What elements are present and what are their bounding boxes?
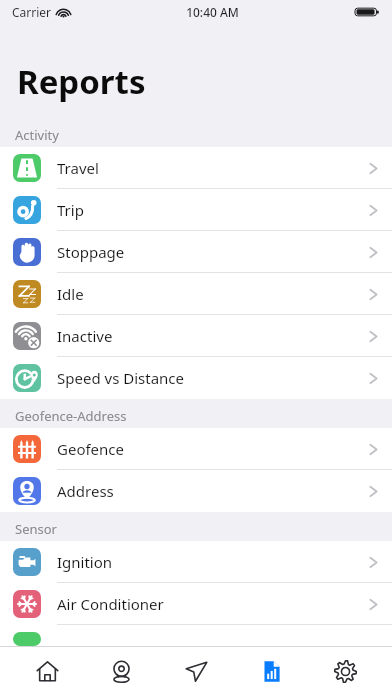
- staticText: Travel: [57, 158, 99, 178]
- staticText: Activity: [15, 126, 59, 144]
- staticText: Inactive: [57, 326, 113, 346]
- staticText: Carrier: [12, 4, 52, 20]
- button[interactable]: Stoppage: [0, 231, 392, 273]
- staticText: Geofence: [57, 439, 125, 459]
- button[interactable]: Inactive: [0, 315, 392, 357]
- staticText: Stoppage: [57, 242, 125, 262]
- staticText: Ignition: [57, 552, 113, 572]
- button[interactable]: Geofence: [0, 428, 392, 470]
- staticText: Address: [57, 481, 114, 501]
- button[interactable]: Speed vs Distance: [0, 357, 392, 399]
- staticText: 10:40 AM: [186, 4, 239, 20]
- button[interactable]: Places: [93, 647, 149, 695]
- staticText: Geofence-Address: [15, 407, 127, 425]
- button[interactable]: Address: [0, 470, 392, 512]
- button[interactable]: Settings: [317, 647, 373, 695]
- button[interactable]: Air Conditioner: [0, 583, 392, 625]
- button[interactable]: Reports: [243, 647, 299, 695]
- button[interactable]: Home: [19, 647, 75, 695]
- staticText: Air Conditioner: [57, 594, 164, 614]
- staticText: Reports: [17, 59, 146, 104]
- button[interactable]: Travel: [0, 147, 392, 189]
- staticText: Idle: [57, 284, 84, 304]
- button[interactable]: Idle: [0, 273, 392, 315]
- button[interactable]: Trip: [0, 189, 392, 231]
- button[interactable]: Navigate: [168, 647, 224, 695]
- staticText: Sensor: [15, 520, 57, 538]
- staticText: Speed vs Distance: [57, 368, 184, 388]
- staticText: Trip: [57, 200, 84, 220]
- button[interactable]: Ignition: [0, 541, 392, 583]
